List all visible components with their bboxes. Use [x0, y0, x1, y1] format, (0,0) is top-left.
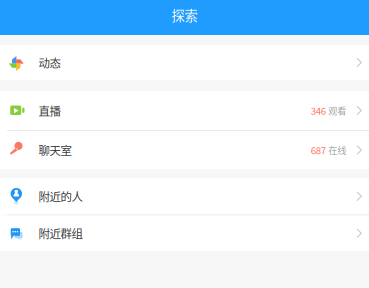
button[interactable]: 附近的人 — [0, 178, 369, 214]
staticText: 动态 — [38, 54, 60, 71]
staticText: 附近的人 — [38, 188, 82, 204]
button[interactable]: 动态 — [0, 45, 369, 80]
staticText: 探索 — [171, 5, 197, 25]
staticText: 直播 — [38, 102, 60, 119]
staticText: 聊天室 — [38, 142, 71, 158]
staticText: 346 — [311, 103, 326, 117]
staticText: 附近群组 — [38, 225, 82, 241]
staticText: 687 — [311, 143, 326, 157]
button[interactable]: 附近群组 — [0, 215, 369, 251]
button[interactable]: 直播 — [0, 91, 369, 130]
staticText: 在线 — [328, 143, 346, 157]
button[interactable]: 聊天室 — [0, 131, 369, 169]
staticText: 观看 — [328, 104, 346, 117]
